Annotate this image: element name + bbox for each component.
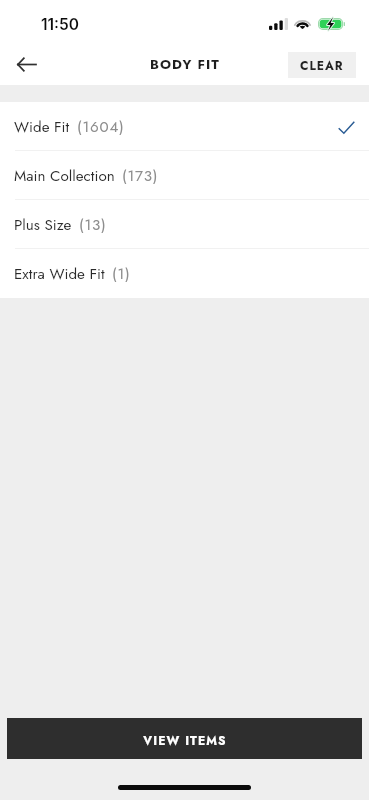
staticText: CLEAR: [300, 57, 344, 74]
button[interactable]: Main Collection: [0, 151, 369, 200]
staticText: 11:50: [41, 15, 80, 34]
staticText: (13): [79, 214, 107, 236]
staticText: Wide Fit: [14, 116, 70, 138]
button[interactable]: Plus Size: [0, 200, 369, 249]
button[interactable]: Extra Wide Fit: [0, 249, 369, 298]
staticText: (1604): [77, 116, 125, 138]
staticText: Plus Size: [14, 214, 72, 236]
staticText: BODY FIT: [150, 55, 220, 75]
staticText: (173): [122, 165, 159, 187]
button[interactable]: CLEAR: [288, 52, 356, 78]
staticText: Main Collection: [14, 165, 115, 187]
button[interactable]: VIEW ITEMS: [7, 718, 362, 759]
button[interactable]: Back: [4, 44, 48, 85]
staticText: (1): [112, 263, 131, 285]
staticText: VIEW ITEMS: [143, 732, 227, 749]
staticText: Extra Wide Fit: [14, 263, 105, 285]
button[interactable]: Wide Fit: [0, 102, 369, 151]
